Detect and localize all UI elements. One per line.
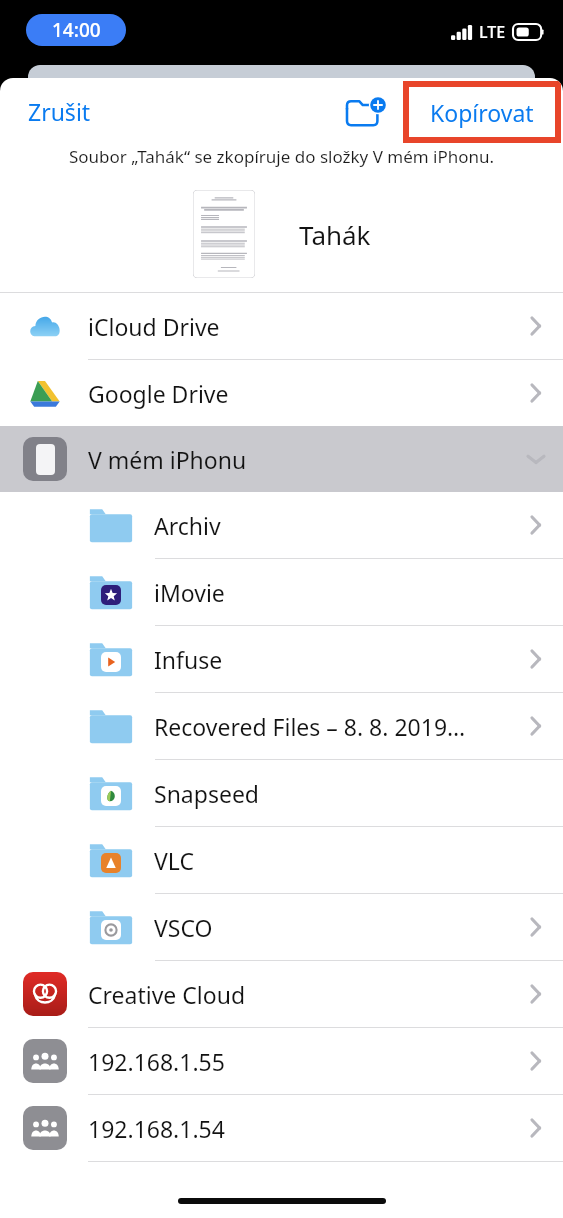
- staticText: 192.168.1.54: [88, 1113, 501, 1144]
- button[interactable]: Infuse: [0, 626, 563, 692]
- button[interactable]: iMovie: [0, 559, 563, 625]
- staticText: VLC: [154, 845, 501, 876]
- staticText: Kopírovat: [430, 97, 534, 128]
- staticText: iMovie: [154, 577, 501, 608]
- staticText: Recovered Files – 8. 8. 2019…: [154, 711, 501, 742]
- button[interactable]: Archiv: [0, 492, 563, 558]
- button[interactable]: Snapseed: [0, 760, 563, 826]
- staticText: Snapseed: [154, 778, 501, 809]
- button[interactable]: Kopírovat: [409, 87, 555, 137]
- button[interactable]: iCloud Drive: [0, 293, 563, 359]
- staticText: Google Drive: [88, 378, 501, 409]
- button[interactable]: Recovered Files – 8. 8. 2019…: [0, 693, 563, 759]
- staticText: Archiv: [154, 510, 501, 541]
- button[interactable]: Creative Cloud: [0, 961, 563, 1027]
- staticText: Tahák: [299, 217, 371, 252]
- button[interactable]: 192.168.1.54: [0, 1095, 563, 1161]
- button[interactable]: VLC: [0, 827, 563, 893]
- button[interactable]: Zrušit: [10, 88, 109, 135]
- staticText: Zrušit: [28, 96, 91, 127]
- staticText: Infuse: [154, 644, 501, 675]
- staticText: LTE: [479, 21, 506, 43]
- button[interactable]: V mém iPhonu: [0, 426, 563, 492]
- staticText: Creative Cloud: [88, 979, 501, 1010]
- staticText: V mém iPhonu: [88, 444, 501, 475]
- button[interactable]: Google Drive: [0, 360, 563, 426]
- button[interactable]: 192.168.1.55: [0, 1028, 563, 1094]
- staticText: 14:00: [52, 17, 101, 43]
- button[interactable]: VSCO: [0, 894, 563, 960]
- staticText: iCloud Drive: [88, 311, 501, 342]
- staticText: Soubor „Tahák“ se zkopíruje do složky V …: [69, 145, 495, 168]
- button[interactable]: New Folder: [340, 86, 392, 138]
- staticText: VSCO: [154, 912, 501, 943]
- staticText: 192.168.1.55: [88, 1046, 501, 1077]
